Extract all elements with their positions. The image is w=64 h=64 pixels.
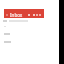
button[interactable] bbox=[4, 9, 44, 18]
staticText: Inbox bbox=[10, 12, 23, 18]
